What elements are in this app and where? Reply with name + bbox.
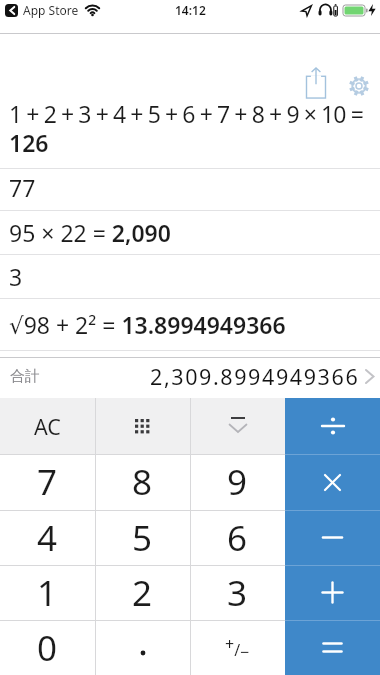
- staticText: 126: [9, 127, 49, 158]
- staticText: 1: [37, 569, 58, 617]
- staticText: 合計: [10, 367, 40, 386]
- staticText: 14:12: [175, 2, 206, 18]
- staticText: 5: [132, 514, 153, 562]
- button[interactable]: 77: [0, 169, 380, 210]
- staticText: 7: [37, 458, 58, 506]
- staticText: 0: [37, 624, 58, 672]
- button[interactable]: 8: [95, 454, 190, 510]
- button[interactable]: 3: [0, 255, 380, 298]
- button[interactable]: [285, 510, 380, 565]
- staticText: 77: [9, 172, 36, 203]
- button[interactable]: 7: [0, 454, 95, 510]
- staticText: 2,309.8994949366: [150, 362, 360, 391]
- staticText: 2: [132, 569, 153, 617]
- staticText: 3: [227, 569, 248, 617]
- staticText: 3: [9, 261, 23, 292]
- staticText: 6: [227, 514, 248, 562]
- staticText: 4: [37, 514, 58, 562]
- button[interactable]: [349, 76, 369, 96]
- staticText: 1 + 2 + 3 + 4 + 5 + 6 + 7 + 8 + 9 × 10 =: [9, 98, 363, 129]
- button[interactable]: [95, 620, 190, 675]
- staticText: AC: [34, 412, 61, 441]
- button[interactable]: [285, 454, 380, 510]
- button[interactable]: 4: [0, 510, 95, 565]
- staticText: 95 × 22 = 2,090: [9, 217, 171, 248]
- staticText: 8: [132, 458, 153, 506]
- button[interactable]: [285, 398, 380, 454]
- button[interactable]: 2: [95, 565, 190, 620]
- staticText: App Store: [23, 2, 79, 18]
- staticText: √98 + 2² = 13.8994949366: [9, 309, 286, 340]
- button[interactable]: [285, 565, 380, 620]
- staticText: 9: [227, 458, 248, 506]
- button[interactable]: 6: [190, 510, 285, 565]
- button[interactable]: 合計: [0, 358, 380, 398]
- button[interactable]: 0: [0, 620, 95, 675]
- button[interactable]: 5: [95, 510, 190, 565]
- button[interactable]: [190, 398, 285, 454]
- button[interactable]: 1: [0, 565, 95, 620]
- button[interactable]: √98 + 2² = 13.8994949366: [0, 299, 380, 350]
- staticText: +/−: [225, 633, 250, 662]
- button[interactable]: AC: [0, 398, 95, 454]
- button[interactable]: 95 × 22 = 2,090: [0, 211, 380, 254]
- button[interactable]: 3: [190, 565, 285, 620]
- button[interactable]: [285, 620, 380, 675]
- button[interactable]: 9: [190, 454, 285, 510]
- button[interactable]: +/−: [190, 620, 285, 675]
- button[interactable]: [95, 398, 190, 454]
- button[interactable]: [305, 67, 327, 99]
